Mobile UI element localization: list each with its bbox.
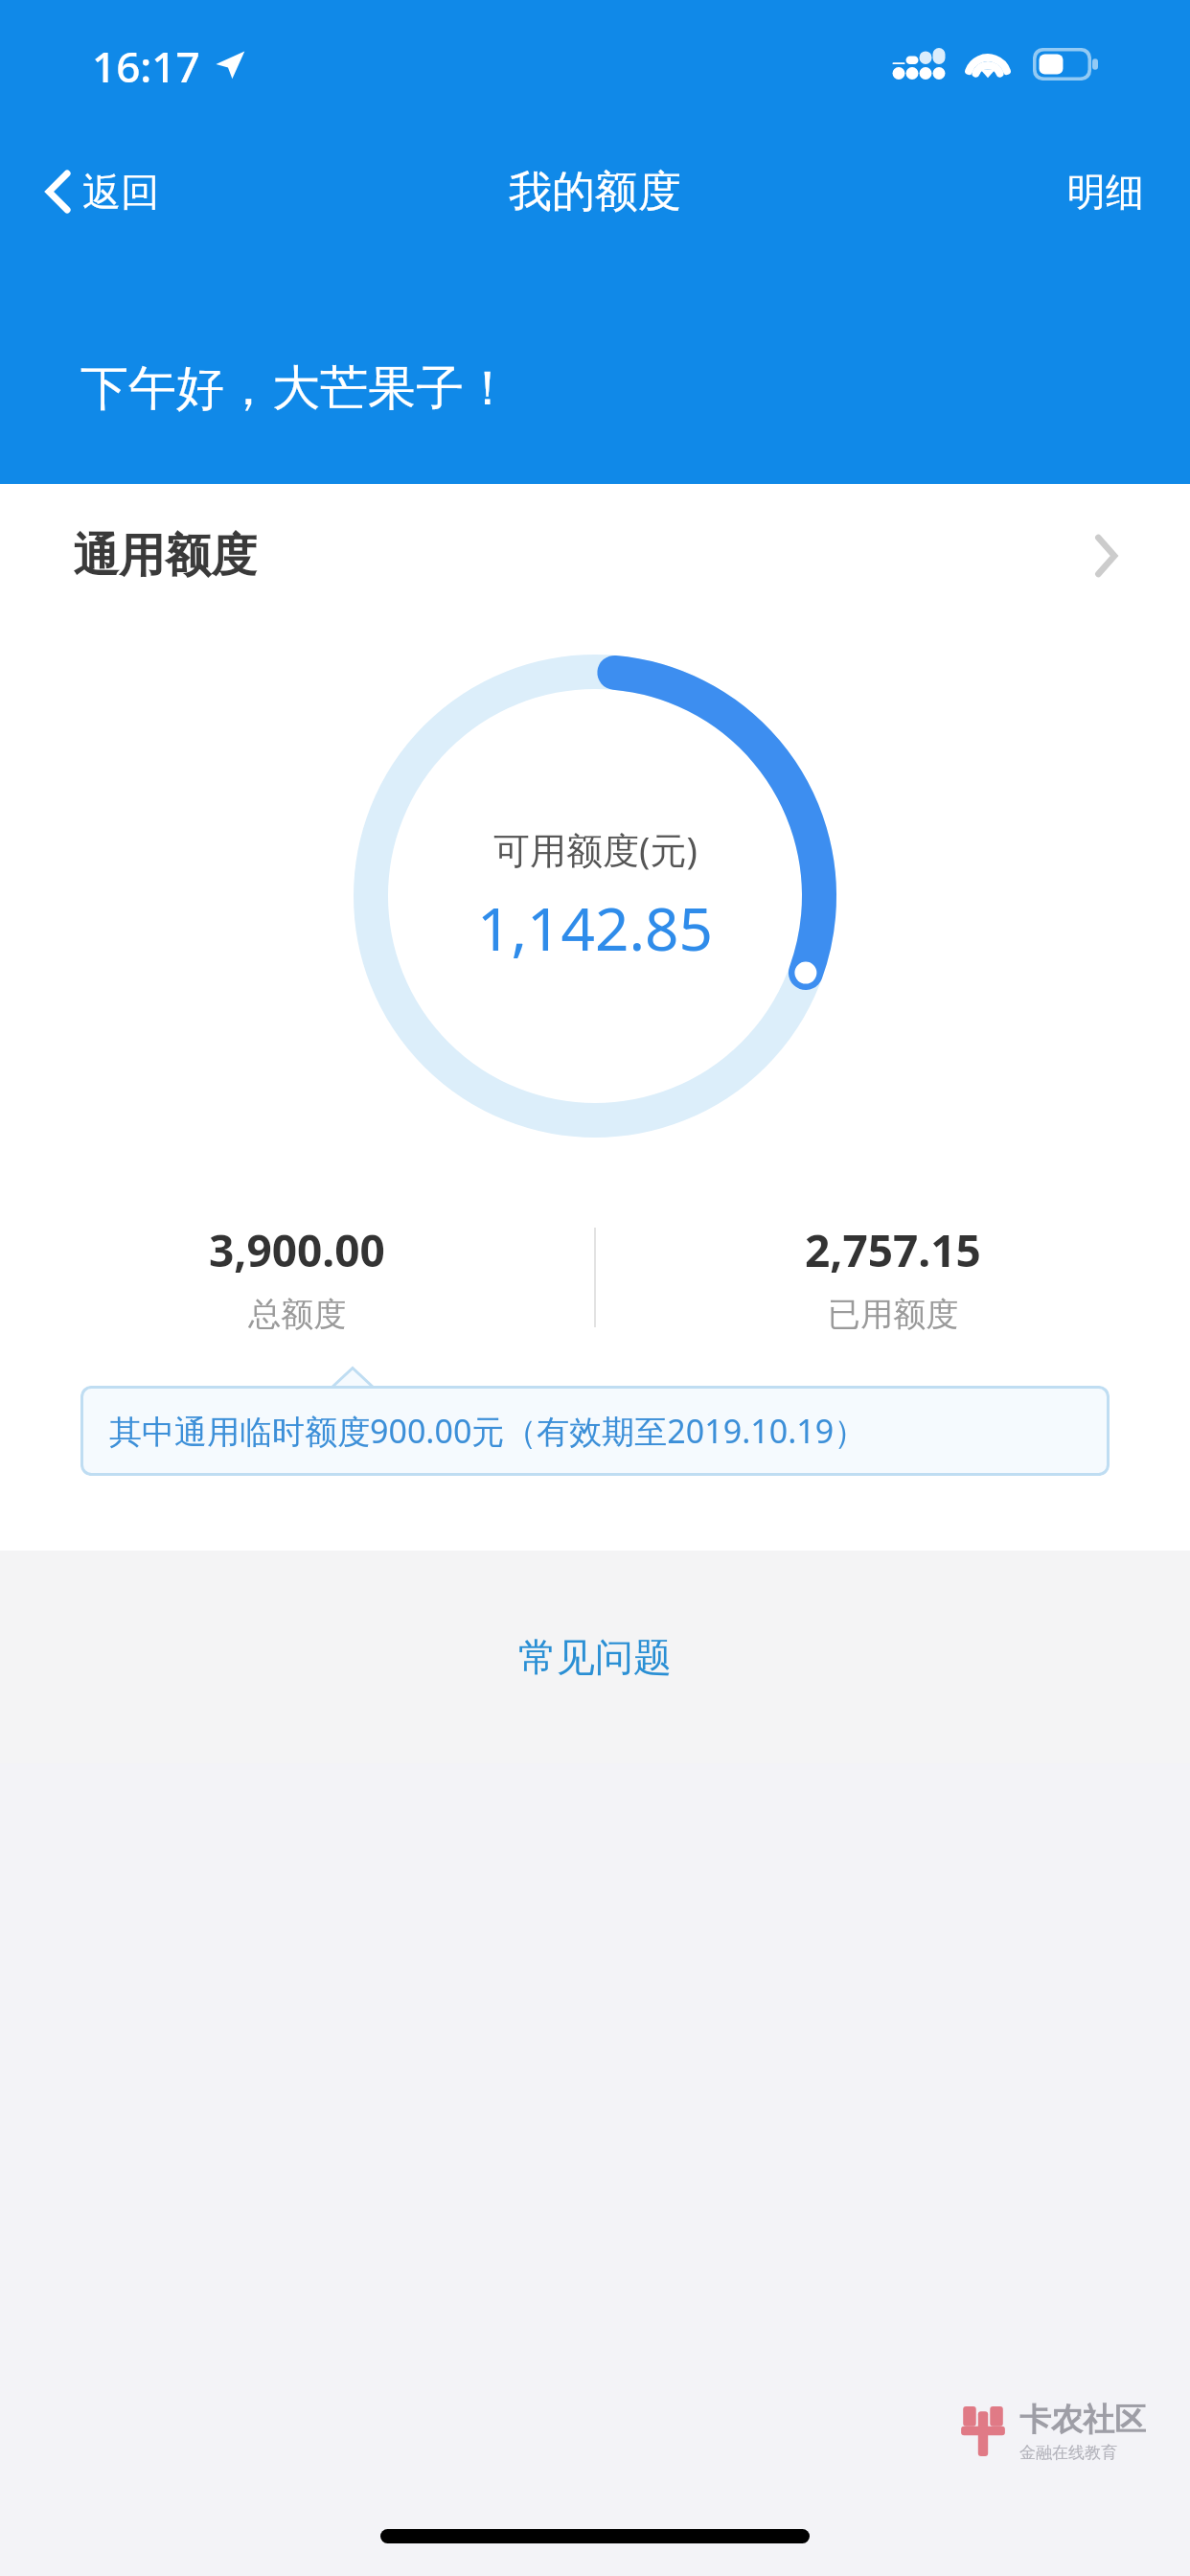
button[interactable]: 通用额度 <box>0 484 1190 628</box>
staticText: 可用额度(元) <box>493 824 698 874</box>
staticText: 3,900.00 <box>209 1220 385 1280</box>
staticText: 1,142.85 <box>477 887 714 968</box>
button[interactable]: 返回 <box>0 154 182 229</box>
staticText: 16:17 <box>92 37 200 95</box>
button[interactable]: 2,757.15 <box>596 1220 1190 1335</box>
staticText: 下午好，大芒果子！ <box>80 358 512 419</box>
staticText: 我的额度 <box>509 165 681 219</box>
staticText: 通用额度 <box>73 527 257 585</box>
staticText: 返回 <box>82 168 159 216</box>
staticText: 金融在线教育 <box>1019 2443 1117 2463</box>
staticText: 其中通用临时额度900.00元（有效期至2019.10.19） <box>109 1409 867 1453</box>
other: 查看通用额度详情 <box>1094 536 1117 576</box>
staticText: 2,757.15 <box>805 1220 981 1280</box>
button[interactable]: 3,900.00 <box>0 1220 594 1335</box>
button[interactable]: 其中通用临时额度900.00元（有效期至2019.10.19） <box>80 1386 1110 1476</box>
staticText: 卡农社区 <box>1019 2400 1146 2440</box>
staticText: 已用额度 <box>828 1294 958 1335</box>
staticText: 明细 <box>1067 168 1144 216</box>
staticText: 总额度 <box>248 1294 346 1335</box>
button[interactable]: 明细 <box>1039 154 1190 229</box>
button[interactable]: 常见问题 <box>461 1610 729 1704</box>
staticText: 常见问题 <box>518 1633 672 1681</box>
